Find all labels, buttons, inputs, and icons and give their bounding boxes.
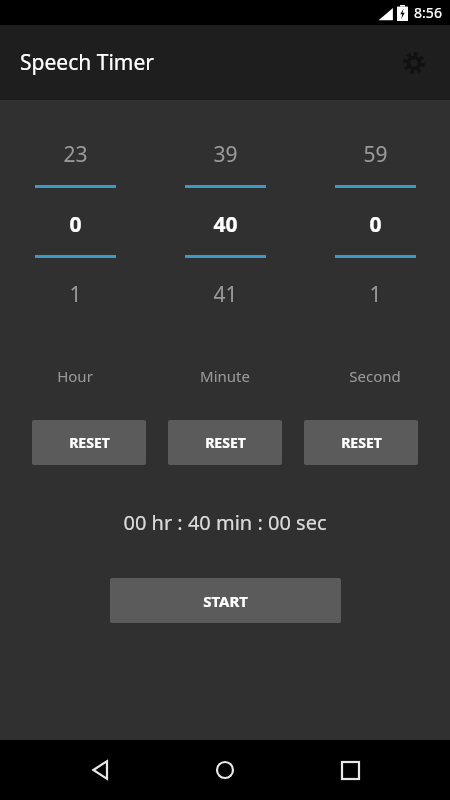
- button[interactable]: Settings: [392, 41, 436, 85]
- staticText: Hour: [57, 366, 93, 386]
- button[interactable]: RESET: [304, 420, 418, 465]
- button[interactable]: Back: [77, 746, 125, 794]
- staticText: 59: [363, 140, 388, 164]
- button[interactable]: 1: [0, 280, 150, 304]
- staticText: 00 hr : 40 min : 00 sec: [123, 509, 327, 536]
- button[interactable]: 40: [150, 210, 300, 234]
- button[interactable]: 23: [0, 140, 150, 164]
- button[interactable]: Home: [201, 746, 249, 794]
- staticText: RESET: [341, 433, 382, 452]
- staticText: Speech Timer: [20, 48, 154, 77]
- staticText: START: [203, 591, 248, 611]
- button[interactable]: 0: [300, 210, 450, 234]
- staticText: Second: [349, 366, 401, 386]
- button[interactable]: 59: [300, 140, 450, 164]
- button[interactable]: RESET: [32, 420, 146, 465]
- button[interactable]: RESET: [168, 420, 282, 465]
- staticText: 40: [213, 210, 238, 234]
- button[interactable]: 41: [150, 280, 300, 304]
- button[interactable]: 0: [0, 210, 150, 234]
- button[interactable]: 39: [150, 140, 300, 164]
- button[interactable]: Recent apps: [326, 746, 374, 794]
- staticText: Minute: [200, 366, 250, 386]
- button[interactable]: 1: [300, 280, 450, 304]
- staticText: 1: [369, 280, 382, 304]
- staticText: 0: [69, 210, 82, 234]
- staticText: RESET: [69, 433, 110, 452]
- staticText: 8:56: [414, 3, 442, 22]
- staticText: RESET: [205, 433, 246, 452]
- staticText: 0: [369, 210, 382, 234]
- staticText: 41: [213, 280, 238, 304]
- staticText: 39: [213, 140, 238, 164]
- button[interactable]: START: [110, 578, 341, 623]
- staticText: 1: [69, 280, 82, 304]
- staticText: 23: [63, 140, 88, 164]
